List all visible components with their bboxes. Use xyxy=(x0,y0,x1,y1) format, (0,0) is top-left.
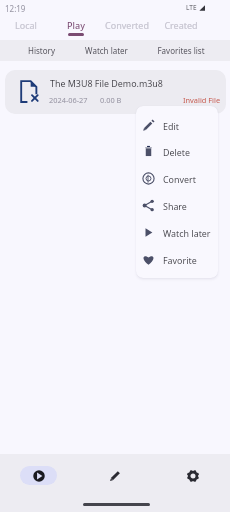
button[interactable]: Play xyxy=(50,16,102,38)
staticText: 12:19 xyxy=(5,3,26,14)
staticText: Watch later xyxy=(163,227,211,239)
staticText: Created xyxy=(164,19,198,31)
staticText: 0.00 B xyxy=(100,95,122,105)
staticText: History xyxy=(28,45,55,56)
staticText: The M3U8 File Demo.m3u8 xyxy=(50,77,163,89)
staticText: Convert xyxy=(163,173,196,185)
staticText: Favorite xyxy=(163,254,197,266)
button[interactable]: Play xyxy=(20,466,57,485)
staticText: Invalid File xyxy=(183,95,221,105)
button[interactable]: Watch later xyxy=(75,40,137,61)
button[interactable]: Watch later xyxy=(136,219,218,246)
button[interactable]: Local xyxy=(0,16,52,38)
staticText: Delete xyxy=(163,146,191,158)
button[interactable]: History xyxy=(10,40,72,61)
staticText: Edit xyxy=(163,120,179,132)
button[interactable]: Favorite xyxy=(136,246,218,273)
staticText: LTE xyxy=(186,3,197,12)
button[interactable]: Favorites list xyxy=(150,40,212,61)
staticText: Local xyxy=(15,19,37,31)
staticText: 2024-06-27 xyxy=(49,95,88,105)
button[interactable]: Created xyxy=(155,16,207,38)
button[interactable]: Share xyxy=(136,192,218,219)
button[interactable]: Edit xyxy=(136,112,218,139)
staticText: Play xyxy=(67,19,85,31)
button[interactable]: Settings xyxy=(174,466,211,485)
staticText: Converted xyxy=(105,19,149,31)
staticText: Favorites list xyxy=(157,45,205,56)
button[interactable]: Convert xyxy=(136,165,218,192)
button[interactable]: Delete xyxy=(136,138,218,165)
button[interactable]: The M3U8 File Demo.m3u8 xyxy=(5,70,226,114)
staticText: Watch later xyxy=(85,45,128,56)
button[interactable]: Converted xyxy=(101,16,153,38)
button[interactable]: Edit xyxy=(96,466,133,485)
staticText: Share xyxy=(163,200,187,212)
